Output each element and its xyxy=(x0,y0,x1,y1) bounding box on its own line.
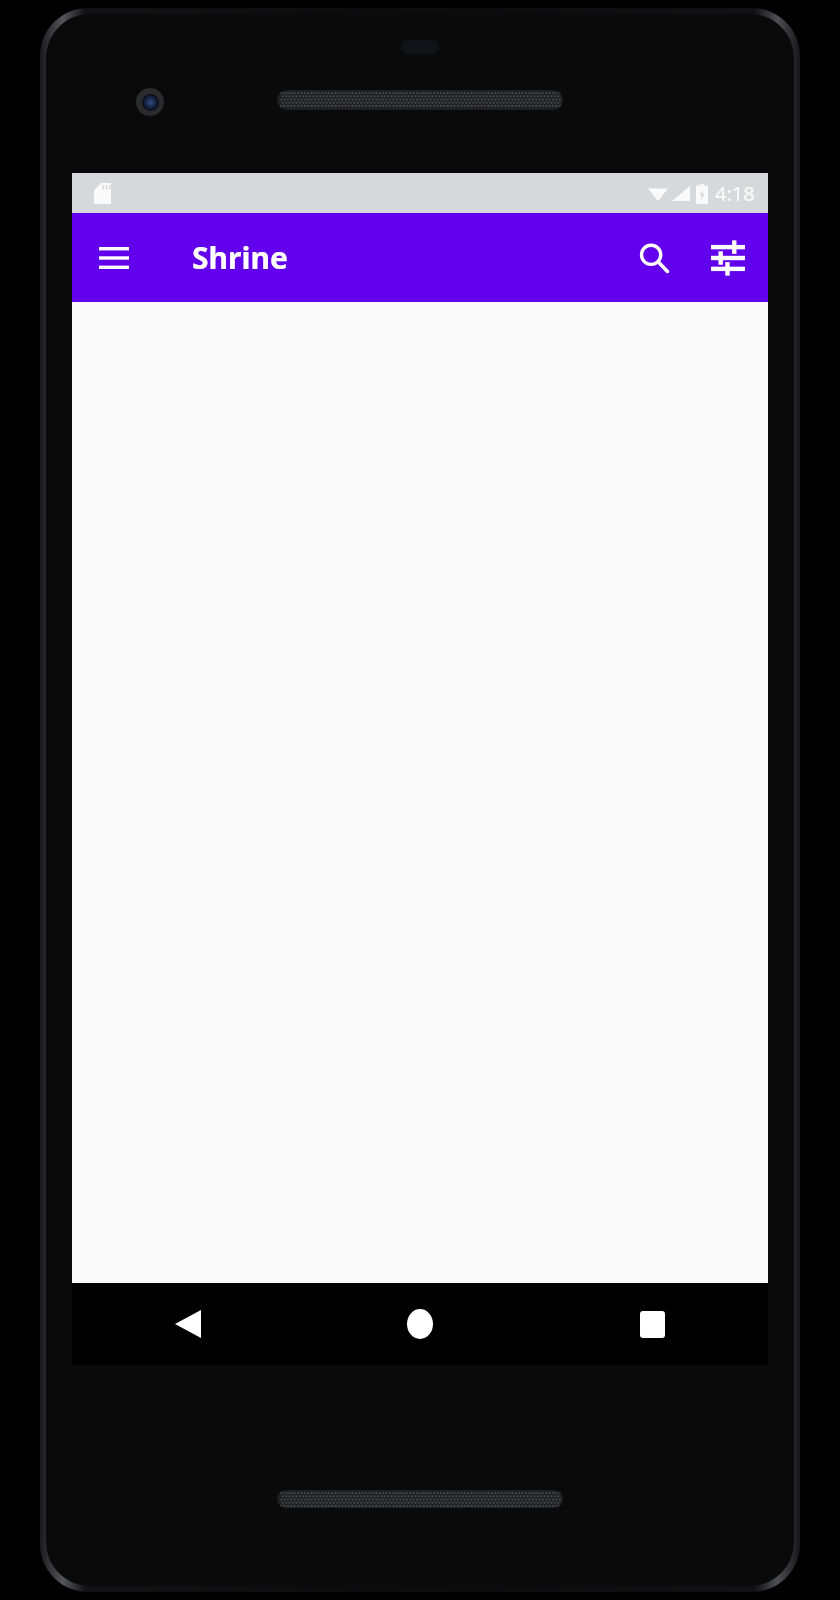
staticText: Shrine xyxy=(192,237,288,278)
button[interactable]: Back xyxy=(72,1283,304,1365)
button[interactable]: Recent apps xyxy=(536,1283,768,1365)
button[interactable]: Home xyxy=(304,1283,536,1365)
staticText: 4:18 xyxy=(715,180,755,207)
button[interactable]: Open navigation menu xyxy=(86,230,142,286)
button[interactable]: Search xyxy=(624,228,684,288)
button[interactable]: Filter options xyxy=(698,228,758,288)
